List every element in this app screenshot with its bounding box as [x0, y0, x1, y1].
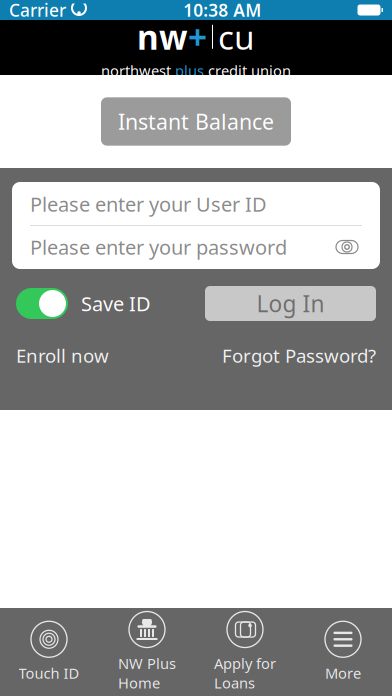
button[interactable]: Apply for Loans — [196, 618, 294, 686]
staticText: Log In — [256, 288, 324, 318]
button[interactable]: Enroll now — [16, 343, 109, 368]
button[interactable]: Forgot Password? — [222, 343, 376, 368]
staticText: Apply for Loans — [214, 653, 276, 692]
staticText: Instant Balance — [118, 107, 274, 136]
button[interactable]: Show password — [332, 234, 362, 260]
staticText: plus — [175, 61, 204, 80]
staticText: 10:38 AM — [183, 0, 261, 21]
button[interactable]: Touch ID — [0, 618, 98, 686]
button[interactable]: Save ID — [16, 288, 151, 319]
staticText: credit union — [204, 61, 291, 80]
staticText: More — [325, 663, 361, 683]
staticText: Save ID — [81, 290, 151, 317]
staticText: northwest — [101, 61, 175, 80]
staticText: Please enter your password — [30, 234, 287, 260]
staticText: Enroll now — [16, 343, 109, 368]
staticText: nw — [137, 15, 188, 59]
staticText: Please enter your User ID — [30, 191, 267, 217]
button[interactable]: NW Plus Home — [98, 618, 196, 686]
staticText: Touch ID — [18, 663, 79, 683]
staticText: Forgot Password? — [222, 343, 376, 368]
staticText: Carrier — [9, 0, 66, 21]
staticText: + — [188, 15, 207, 59]
staticText: cu — [218, 15, 255, 59]
staticText: NW Plus Home — [118, 653, 176, 692]
button[interactable]: Instant Balance — [101, 97, 291, 146]
button[interactable]: More — [294, 618, 392, 686]
button[interactable]: Log In — [205, 286, 376, 321]
